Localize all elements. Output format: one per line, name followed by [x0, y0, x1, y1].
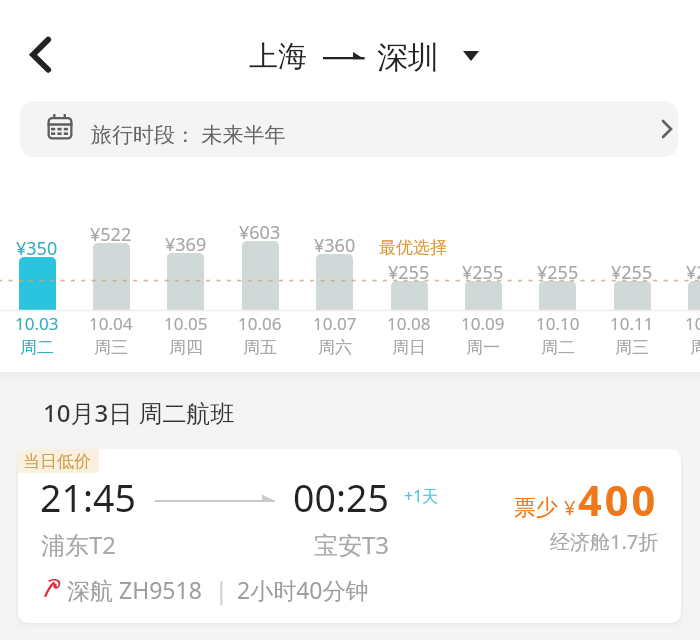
button[interactable]	[595, 225, 669, 360]
staticText: 10.06	[238, 312, 282, 335]
button[interactable]	[0, 225, 74, 360]
staticText: 周二	[20, 337, 54, 358]
staticText: +1天	[404, 485, 439, 507]
staticText: 10.04	[89, 312, 133, 335]
staticText: 周日	[392, 337, 426, 358]
staticText: 400	[578, 472, 659, 529]
staticText: 票少	[514, 494, 558, 522]
staticText: ¥255	[462, 260, 504, 285]
staticText: 深航 ZH9518	[67, 574, 202, 605]
staticText: 周二	[541, 337, 575, 358]
staticText: 10.07	[313, 312, 357, 335]
staticText: 00:25	[293, 472, 389, 523]
button[interactable]	[521, 225, 595, 360]
staticText: ¥369	[165, 232, 207, 257]
button[interactable]	[446, 225, 520, 360]
staticText: 周四	[169, 337, 203, 358]
button[interactable]: Back	[12, 30, 70, 88]
staticText: 宝安T3	[314, 528, 390, 561]
button[interactable]	[149, 225, 223, 360]
staticText: 2小时40分钟	[237, 574, 369, 605]
staticText: 周三	[94, 337, 128, 358]
staticText: 上海	[249, 38, 307, 75]
staticText: 10月3日 周二航班	[43, 396, 235, 429]
button[interactable]	[372, 225, 446, 360]
staticText: ¥	[564, 494, 576, 521]
staticText: 旅行时段： 未来半年	[91, 120, 286, 149]
staticText: 10.11	[610, 312, 654, 335]
button[interactable]: 旅行时段： 未来半年	[20, 101, 678, 157]
button[interactable]: 上海	[244, 32, 488, 74]
staticText: 21:45	[40, 472, 136, 523]
staticText: 当日低价	[23, 451, 91, 472]
button[interactable]	[298, 225, 372, 360]
staticText: ¥350	[16, 236, 58, 261]
staticText: 深圳	[377, 38, 439, 77]
button[interactable]	[223, 225, 297, 360]
staticText: ¥255	[537, 260, 579, 285]
staticText: 10.10	[536, 312, 580, 335]
staticText: ¥255	[388, 260, 430, 285]
staticText: 周五	[243, 337, 277, 358]
staticText: 浦东T2	[41, 528, 117, 561]
staticText: ¥360	[314, 233, 356, 258]
staticText: ¥255	[611, 260, 653, 285]
staticText: |	[215, 574, 228, 605]
staticText: 周四	[690, 337, 700, 358]
staticText: 10.05	[164, 312, 208, 335]
staticText: 10.03	[15, 312, 59, 335]
staticText: ¥522	[90, 222, 132, 247]
staticText: 周一	[466, 337, 500, 358]
staticText: 10.08	[387, 312, 431, 335]
staticText: 周三	[615, 337, 649, 358]
staticText: 最优选择	[379, 237, 447, 258]
button[interactable]	[670, 225, 700, 360]
staticText: 10.09	[461, 312, 505, 335]
button[interactable]	[74, 225, 148, 360]
staticText: 10.12	[685, 312, 700, 335]
staticText: 经济舱1.7折	[550, 528, 659, 555]
staticText: 周六	[318, 337, 352, 358]
button[interactable]: 当日低价	[18, 449, 681, 623]
staticText: ¥255	[686, 260, 700, 285]
staticText: ¥603	[239, 220, 281, 245]
